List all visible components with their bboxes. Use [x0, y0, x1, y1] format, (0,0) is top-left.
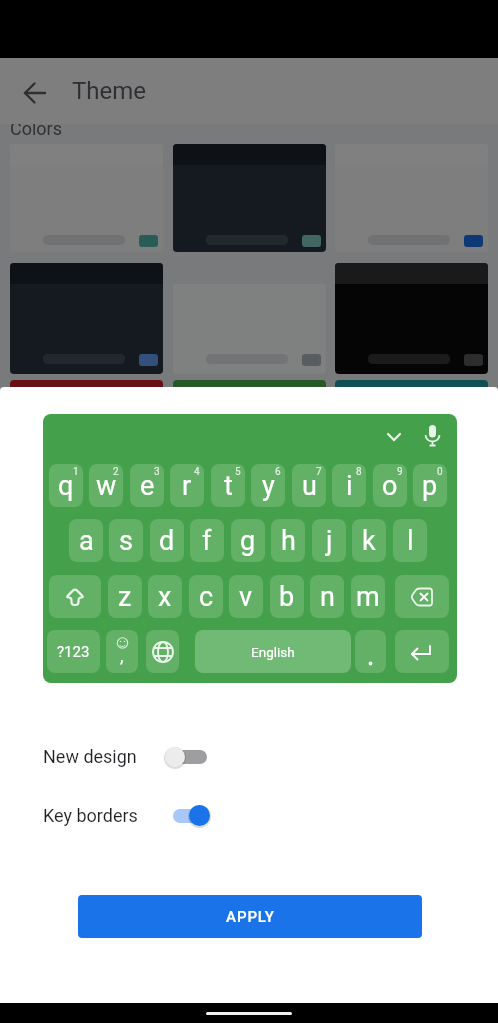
staticText: v	[239, 581, 253, 613]
button[interactable]	[30, 788, 230, 842]
button[interactable]	[335, 263, 488, 374]
staticText: u	[302, 470, 317, 502]
button[interactable]: APPLY	[78, 895, 422, 938]
staticText: 5	[235, 466, 241, 478]
staticText: Theme	[72, 77, 147, 105]
staticText: 8	[356, 466, 362, 478]
staticText: ?123	[57, 643, 90, 661]
staticText: d	[159, 525, 175, 557]
button[interactable]	[10, 263, 163, 374]
staticText: ,	[120, 645, 124, 666]
staticText: r	[182, 470, 192, 502]
button[interactable]	[173, 263, 326, 374]
staticText: h	[281, 525, 296, 557]
staticText: 7	[316, 466, 322, 478]
staticText: s	[119, 525, 133, 557]
staticText: 1	[73, 466, 79, 478]
staticText: 9	[397, 466, 403, 478]
staticText: 3	[154, 466, 160, 478]
staticText: q	[58, 470, 74, 502]
staticText: 0	[437, 466, 443, 478]
staticText: e	[140, 470, 155, 502]
staticText: l	[407, 525, 414, 557]
button[interactable]	[173, 144, 326, 252]
staticText: j	[326, 525, 333, 557]
staticText: p	[422, 470, 438, 502]
staticText: 2	[113, 466, 119, 478]
staticText: Key borders	[43, 805, 138, 826]
staticText: APPLY	[226, 908, 275, 926]
staticText: Colors	[10, 118, 63, 139]
staticText: z	[118, 581, 132, 613]
staticText: x	[158, 581, 172, 613]
staticText: w	[96, 470, 117, 502]
staticText: k	[362, 525, 376, 557]
button[interactable]	[335, 144, 488, 252]
staticText: g	[240, 525, 256, 557]
button[interactable]	[10, 144, 163, 252]
staticText: c	[199, 581, 214, 613]
button[interactable]	[15, 73, 55, 113]
staticText: English	[251, 644, 295, 660]
staticText: o	[382, 470, 398, 502]
staticText: a	[79, 525, 94, 557]
staticText: i	[346, 470, 353, 502]
staticText: b	[279, 581, 295, 613]
staticText: n	[320, 581, 335, 613]
staticText: 6	[275, 466, 281, 478]
staticText: f	[202, 525, 212, 557]
staticText: New design	[43, 746, 137, 767]
staticText: m	[356, 581, 380, 613]
button[interactable]	[30, 730, 230, 784]
staticText: t	[224, 470, 233, 502]
staticText: 4	[194, 466, 200, 478]
staticText: y	[262, 470, 275, 502]
